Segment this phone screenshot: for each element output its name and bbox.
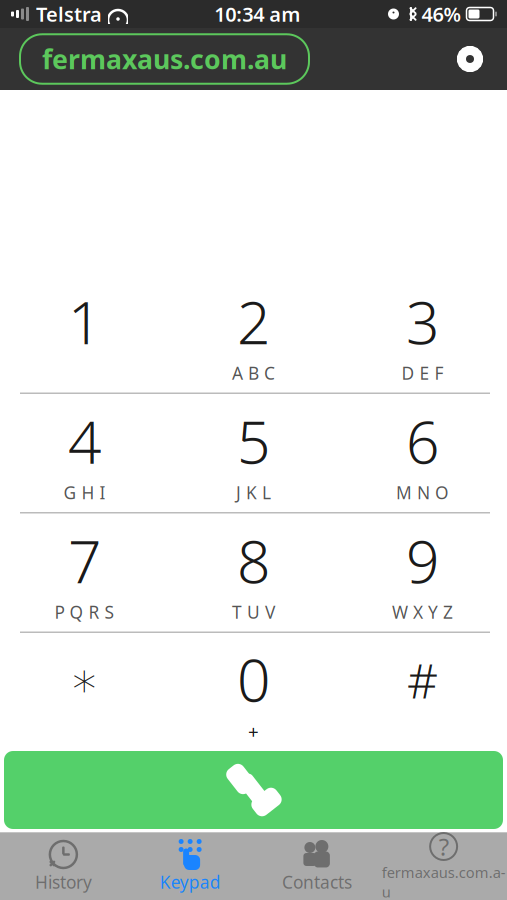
- button[interactable]: Keypad: [127, 833, 254, 900]
- staticText: G H I: [63, 481, 105, 504]
- staticText: ∗: [69, 653, 99, 707]
- button[interactable]: #: [338, 633, 507, 751]
- staticText: 2: [237, 282, 270, 360]
- button[interactable]: 5: [169, 394, 338, 512]
- button[interactable]: 3: [338, 274, 507, 392]
- button[interactable]: 2: [169, 274, 338, 392]
- staticText: 9: [406, 521, 439, 599]
- staticText: 5: [237, 402, 270, 480]
- button[interactable]: fermaxaus.com.au: [20, 34, 309, 84]
- staticText: 1: [68, 282, 101, 360]
- staticText: T U V: [232, 600, 275, 623]
- button[interactable]: ?: [380, 833, 507, 900]
- staticText: +: [248, 719, 259, 744]
- staticText: W X Y Z: [392, 600, 453, 623]
- staticText: Telstra: [36, 1, 102, 27]
- button[interactable]: Call: [4, 751, 503, 829]
- staticText: 0: [237, 640, 270, 718]
- staticText: J K L: [236, 481, 271, 504]
- staticText: History: [35, 870, 92, 893]
- staticText: 8: [237, 521, 270, 599]
- button[interactable]: 0: [169, 633, 338, 751]
- button[interactable]: 1: [0, 274, 169, 392]
- staticText: 10:34 am: [214, 1, 300, 27]
- staticText: 46%: [421, 1, 461, 27]
- staticText: A B C: [232, 361, 275, 384]
- staticText: Contacts: [282, 870, 352, 893]
- button[interactable]: ∗: [0, 633, 169, 751]
- staticText: P Q R S: [54, 600, 114, 623]
- staticText: 4: [68, 402, 101, 480]
- staticText: #: [407, 648, 438, 712]
- staticText: fermaxaus.com.au: [382, 862, 506, 900]
- staticText: 7: [68, 521, 101, 599]
- staticText: Keypad: [160, 870, 221, 893]
- button[interactable]: Contacts: [253, 833, 380, 900]
- staticText: ?: [439, 831, 449, 862]
- button[interactable]: 8: [169, 513, 338, 631]
- button[interactable]: Settings: [449, 38, 491, 80]
- button[interactable]: 7: [0, 513, 169, 631]
- button[interactable]: 9: [338, 513, 507, 631]
- staticText: M N O: [396, 481, 449, 504]
- staticText: fermaxaus.com.au: [42, 41, 287, 77]
- staticText: 6: [406, 402, 439, 480]
- button[interactable]: 6: [338, 394, 507, 512]
- staticText: 3: [406, 282, 439, 360]
- staticText: D E F: [401, 361, 443, 384]
- button[interactable]: History: [0, 833, 127, 900]
- button[interactable]: 4: [0, 394, 169, 512]
